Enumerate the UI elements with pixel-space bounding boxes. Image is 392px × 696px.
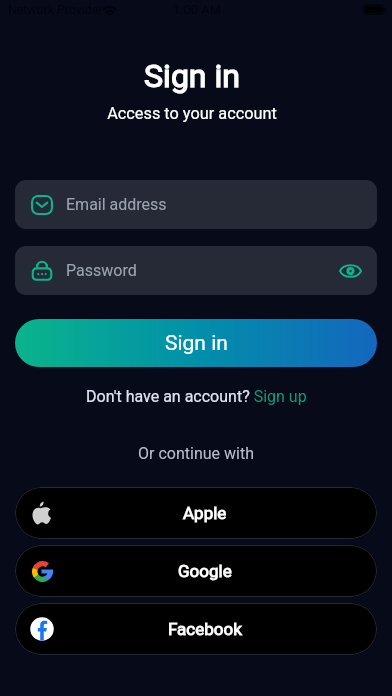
staticText: Apple xyxy=(183,503,227,523)
button[interactable]: Sign in xyxy=(15,319,377,367)
button[interactable]: Show password xyxy=(339,261,362,281)
staticText: 1:00 AM xyxy=(173,2,222,17)
button[interactable]: Email address xyxy=(15,180,377,229)
staticText: Password xyxy=(66,261,137,280)
button[interactable]: Google xyxy=(15,545,377,597)
button[interactable]: Password xyxy=(15,246,377,295)
staticText: Sign in xyxy=(0,57,388,95)
button[interactable]: Don't have an account? Sign up xyxy=(86,387,307,406)
staticText: Or continue with xyxy=(0,444,392,463)
button[interactable]: Facebook xyxy=(15,603,377,655)
staticText: Email address xyxy=(66,195,167,214)
staticText: Sign in xyxy=(165,331,228,356)
button[interactable]: Apple xyxy=(15,487,377,539)
staticText: Facebook xyxy=(168,619,242,639)
staticText: Network Provider xyxy=(8,3,103,17)
staticText: Google xyxy=(178,561,232,581)
staticText: Access to your account xyxy=(0,104,388,123)
